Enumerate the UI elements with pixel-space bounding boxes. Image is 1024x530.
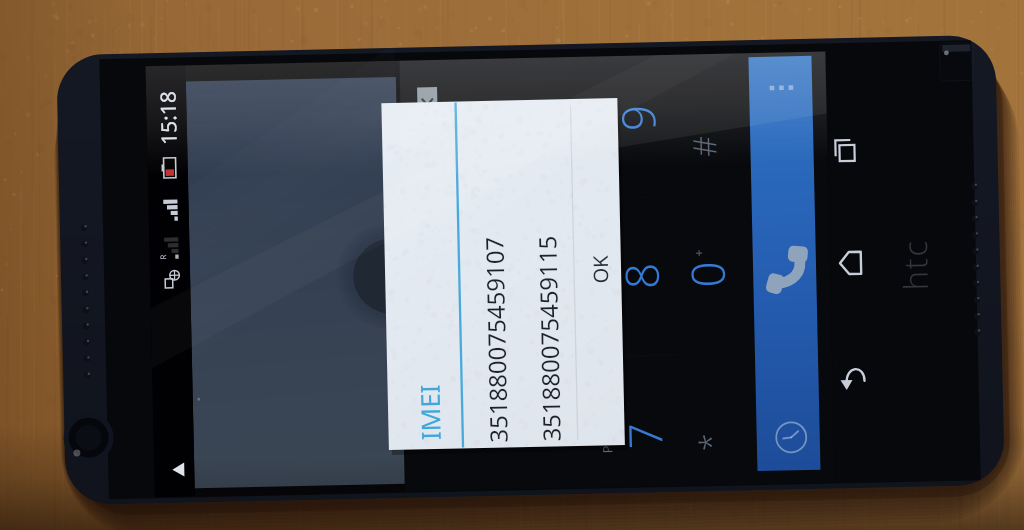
button[interactable] [0, 0, 1024, 530]
other: HTC phone showing IMEI dialog [0, 0, 1024, 530]
